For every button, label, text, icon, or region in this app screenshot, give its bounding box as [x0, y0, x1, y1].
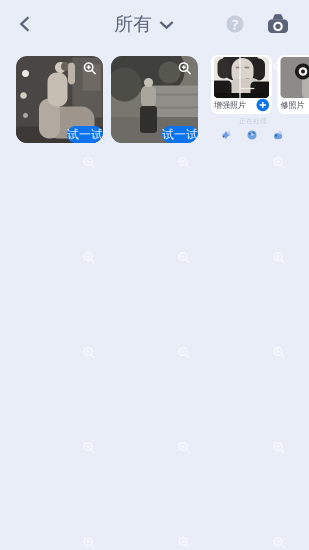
button[interactable]: Help	[219, 2, 251, 46]
button[interactable]: 所有	[114, 2, 174, 46]
staticText: 试一试	[162, 127, 198, 142]
staticText: ?	[231, 14, 238, 34]
button[interactable]: Back	[7, 2, 43, 46]
button[interactable]: Camera	[262, 2, 294, 46]
staticText: 试一试	[67, 127, 103, 142]
button[interactable]: 试一试	[111, 56, 198, 143]
button[interactable]: 增强照片	[211, 55, 272, 114]
button[interactable]: 修照片	[277, 55, 309, 114]
staticText: 正在处理	[239, 117, 267, 125]
staticText: 增强照片	[214, 100, 246, 110]
staticText: 修照片	[280, 100, 304, 110]
staticText: 所有	[114, 12, 152, 35]
button[interactable]: 试一试	[16, 56, 103, 143]
